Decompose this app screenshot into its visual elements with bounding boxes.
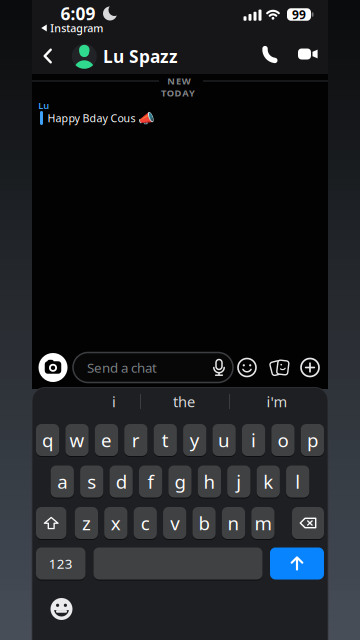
staticText: 99: [292, 6, 306, 22]
button[interactable]: Stickers: [269, 357, 291, 377]
staticText: e: [101, 428, 112, 452]
staticText: y: [190, 428, 200, 452]
button[interactable]: l: [286, 465, 309, 497]
staticText: s: [87, 469, 96, 494]
button[interactable]: Emoji: [237, 358, 256, 377]
button[interactable]: a: [51, 465, 74, 497]
button[interactable]: More: [300, 358, 319, 377]
button[interactable]: Back: [43, 48, 52, 63]
button[interactable]: m: [251, 507, 274, 539]
staticText: the: [173, 392, 195, 411]
button[interactable]: i: [84, 390, 144, 412]
button[interactable]: n: [222, 507, 245, 539]
staticText: Lu Spazz: [103, 45, 178, 68]
button[interactable]: Camera: [38, 353, 67, 382]
staticText: Lu: [38, 99, 49, 112]
staticText: q: [42, 428, 53, 452]
button[interactable]: Instagram: [41, 21, 103, 35]
staticText: 6:09: [60, 2, 95, 25]
staticText: d: [116, 469, 127, 494]
button[interactable]: k: [257, 465, 280, 497]
button[interactable]: f: [139, 465, 162, 497]
staticText: g: [174, 469, 185, 494]
button[interactable]: 123: [36, 547, 85, 579]
staticText: i: [112, 392, 116, 411]
button[interactable]: s: [80, 465, 103, 497]
button[interactable]: c: [134, 507, 157, 539]
staticText: NEW: [167, 75, 191, 87]
staticText: v: [170, 511, 179, 535]
staticText: c: [141, 511, 150, 535]
staticText: k: [263, 469, 273, 494]
button[interactable]: u: [212, 424, 236, 456]
button[interactable]: y: [183, 424, 206, 456]
staticText: j: [236, 469, 241, 494]
button[interactable]: v: [163, 507, 186, 539]
staticText: o: [277, 428, 288, 452]
button[interactable]: Send a chat: [73, 352, 233, 382]
staticText: Happy Bday Cous: [47, 111, 135, 125]
staticText: i: [251, 428, 256, 452]
button[interactable]: r: [124, 424, 147, 456]
button[interactable]: the: [154, 390, 214, 412]
staticText: f: [148, 469, 154, 494]
button[interactable]: Voice message: [212, 359, 225, 376]
button[interactable]: b: [192, 507, 216, 539]
staticText: 123: [49, 555, 73, 572]
staticText: m: [254, 511, 271, 535]
button[interactable]: q: [36, 424, 59, 456]
button[interactable]: i'm: [247, 390, 307, 412]
button[interactable]: Audio call: [260, 47, 279, 63]
staticText: l: [295, 469, 300, 494]
button[interactable]: z: [75, 507, 98, 539]
staticText: h: [203, 469, 215, 494]
button[interactable]: Lu Spazz: [70, 39, 200, 73]
staticText: Send a chat: [87, 359, 157, 376]
button[interactable]: Delete: [292, 507, 324, 539]
staticText: Instagram: [50, 21, 103, 35]
staticText: p: [307, 428, 318, 452]
button[interactable]: Space: [93, 547, 262, 579]
button[interactable]: Shift: [36, 507, 66, 539]
staticText: b: [199, 511, 210, 535]
button[interactable]: Send: [270, 547, 324, 579]
button[interactable]: g: [168, 465, 192, 497]
staticText: i'm: [266, 392, 287, 411]
button[interactable]: i: [242, 424, 265, 456]
staticText: w: [69, 428, 84, 452]
staticText: a: [57, 469, 67, 494]
button[interactable]: e: [95, 424, 118, 456]
staticText: 📣: [137, 110, 154, 126]
button[interactable]: j: [227, 465, 250, 497]
staticText: z: [82, 511, 91, 535]
button[interactable]: o: [271, 424, 295, 456]
button[interactable]: Emoji keyboard: [50, 598, 72, 620]
button[interactable]: t: [154, 424, 177, 456]
button[interactable]: p: [301, 424, 324, 456]
staticText: t: [162, 428, 169, 452]
staticText: n: [227, 511, 239, 535]
button[interactable]: Video call: [298, 47, 319, 61]
button[interactable]: x: [104, 507, 127, 539]
button[interactable]: h: [198, 465, 221, 497]
staticText: u: [218, 428, 230, 452]
staticText: r: [132, 428, 140, 452]
staticText: TODAY: [161, 87, 195, 99]
staticText: x: [111, 511, 121, 535]
button[interactable]: w: [65, 424, 89, 456]
button[interactable]: d: [109, 465, 133, 497]
